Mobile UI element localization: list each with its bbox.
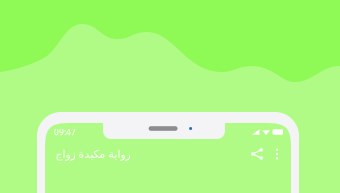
staticText: 09:47 xyxy=(54,126,76,138)
button[interactable]: More options xyxy=(268,143,286,165)
staticText: رواية مكيدة زواج xyxy=(55,148,130,160)
button[interactable]: Share xyxy=(246,143,268,165)
